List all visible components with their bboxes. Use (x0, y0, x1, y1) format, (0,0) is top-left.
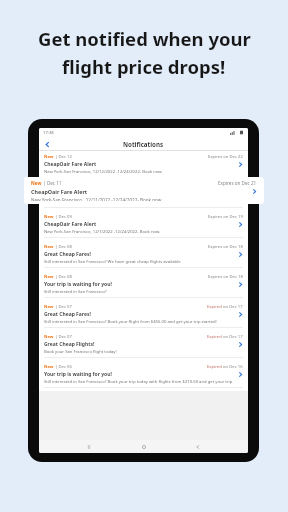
staticText: New (44, 184, 54, 190)
button[interactable]: New (39, 211, 248, 241)
staticText: Expires on Dec 19 (208, 214, 243, 220)
button[interactable]: Back (193, 442, 203, 452)
staticText: on Dec 16 (222, 364, 243, 370)
staticText: Get notified when your (38, 26, 251, 51)
staticText: Still interested in San Francisco? Book … (44, 379, 243, 385)
staticText: Your trip is waiting for you! (44, 371, 112, 378)
staticText: on Dec 17 (222, 334, 243, 340)
staticText: New (44, 334, 54, 340)
staticText: Expired (207, 304, 222, 310)
staticText: Still interested in San Francisco? (44, 289, 107, 295)
button[interactable]: New (39, 241, 248, 271)
staticText: New (44, 154, 54, 160)
button[interactable]: New (39, 181, 248, 211)
staticText: Expires on Dec 18 (208, 244, 243, 250)
staticText: New York-San Francisco, 12/1/2022 -12/24… (44, 229, 161, 235)
staticText: Notifications (123, 140, 164, 148)
staticText: | Dec 07 (54, 304, 72, 310)
staticText: Still interested in San Francisco? We ha… (44, 259, 181, 265)
staticText: 17:38 (43, 130, 54, 136)
staticText: Great Cheap Fares! (44, 251, 91, 258)
staticText: New (44, 364, 54, 370)
staticText: | Dec 12 (54, 154, 72, 160)
staticText: New (44, 274, 54, 280)
staticText: | Dec 08 (54, 274, 72, 280)
staticText: CheapOair Fare Alert (31, 188, 88, 195)
staticText: | Dec 06 (54, 364, 72, 370)
staticText: Book your San Francisco flight today! (44, 349, 117, 355)
button[interactable]: New (39, 301, 248, 331)
staticText: | Dec 08 (54, 244, 72, 250)
staticText: | Dec 07 (54, 334, 72, 340)
staticText: New (44, 244, 54, 250)
staticText: Expired (207, 334, 222, 340)
staticText: flight price drops! (62, 54, 226, 79)
staticText: Expires on Dec 21 (218, 180, 257, 186)
staticText: Expires on Dec 18 (208, 274, 243, 280)
button[interactable]: New (39, 271, 248, 301)
staticText: | Dec 09 (54, 214, 72, 220)
button[interactable]: Home (139, 442, 149, 452)
staticText: Great Cheap Flights! (44, 341, 95, 348)
staticText: | Dec 10 (54, 184, 72, 190)
staticText: New York-San Francisco , 12/11/2022 -12/… (31, 197, 162, 201)
button[interactable]: New (39, 331, 248, 361)
button[interactable]: Back (42, 139, 52, 149)
staticText: New (31, 180, 42, 186)
staticText: New (44, 304, 54, 310)
staticText: CheapOair Fare Alert (44, 161, 97, 168)
staticText: CheapOair Fare Alert (44, 221, 97, 228)
button[interactable]: New (39, 361, 248, 391)
staticText: Your trip is waiting for you! (44, 281, 112, 288)
staticText: New York-San Francisco, 12/1/2022 -12/24… (44, 199, 161, 205)
staticText: Still interested in San Francisco? Book … (44, 319, 217, 325)
staticText: Great Cheap Fares! (44, 311, 91, 318)
staticText: Expires on Dec 20 (208, 184, 243, 190)
staticText: New York-San Francisco, 12/12/2022 -12/2… (44, 169, 163, 175)
button[interactable]: New (39, 151, 248, 181)
staticText: New (44, 214, 54, 220)
staticText: CheapOair Fare Alert (44, 191, 97, 198)
staticText: Expires on Dec 22 (208, 154, 243, 160)
button[interactable]: New (24, 177, 264, 204)
staticText: on Dec 17 (222, 304, 243, 310)
staticText: | Dec 11 (42, 180, 62, 186)
staticText: Expired (207, 364, 222, 370)
button[interactable]: Recents (84, 442, 94, 452)
